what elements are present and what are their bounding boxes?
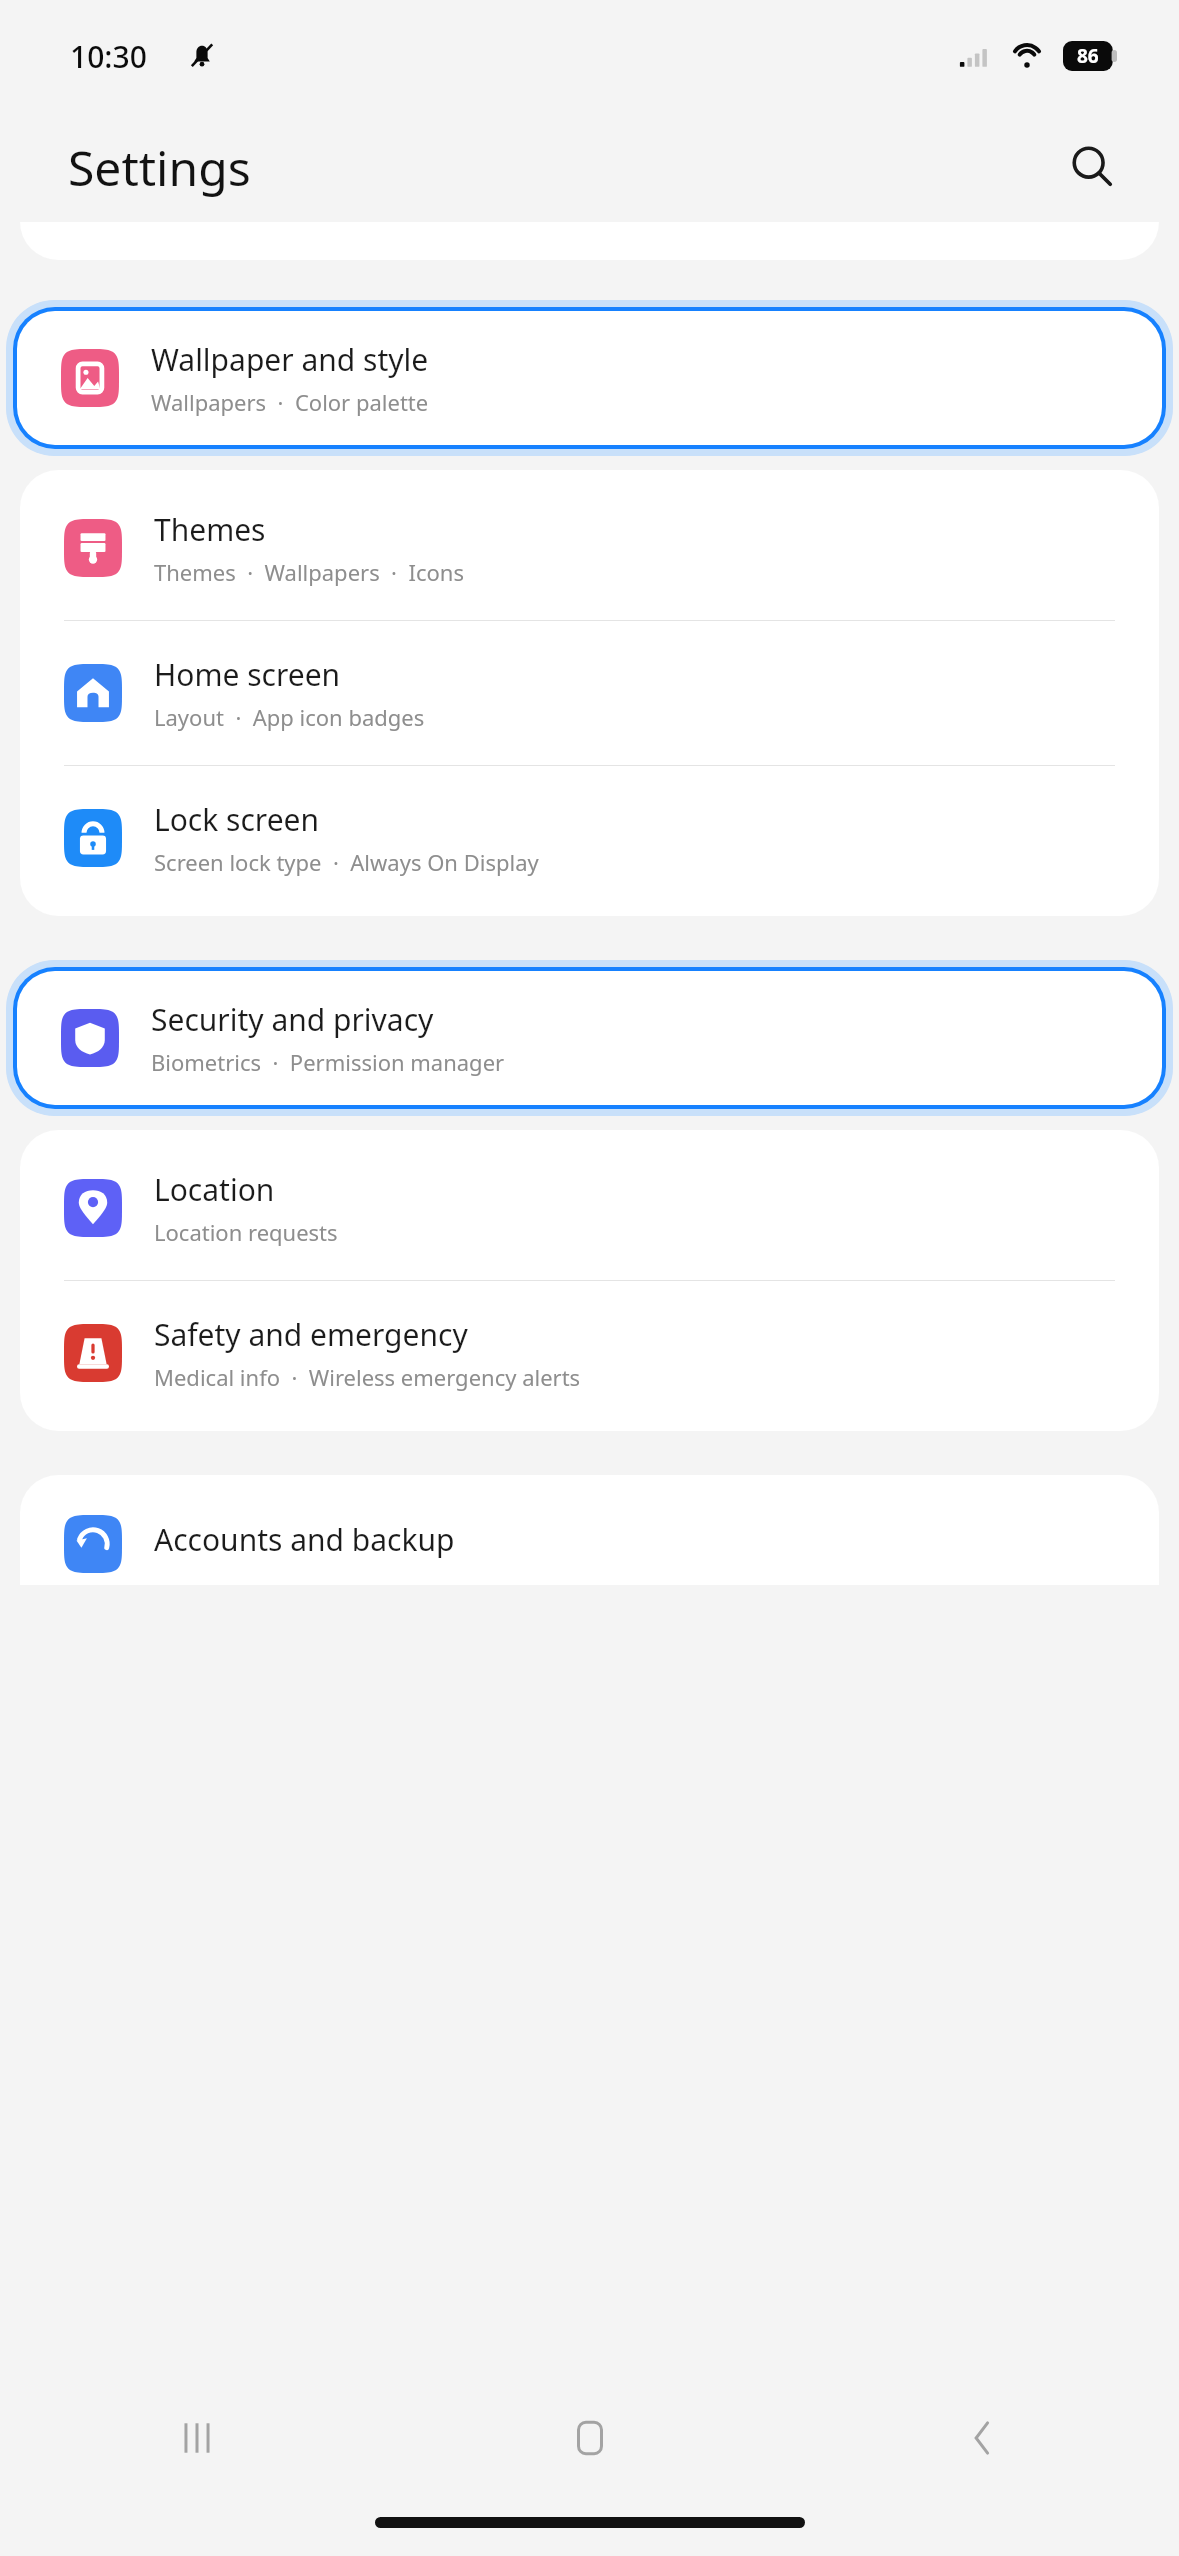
staticText: Home screen bbox=[154, 654, 341, 695]
button[interactable]: Home screen bbox=[20, 621, 1159, 766]
staticText: 86 bbox=[1077, 43, 1099, 69]
staticText: Wallpaper and style bbox=[151, 339, 429, 380]
staticText: Accounts and backup bbox=[154, 1519, 455, 1560]
button[interactable]: Themes bbox=[20, 476, 1159, 621]
staticText: Layout · App icon badges bbox=[154, 702, 425, 732]
button[interactable]: Accounts and backup bbox=[20, 1475, 1159, 1585]
staticText: Location bbox=[154, 1169, 275, 1210]
staticText: Screen lock type · Always On Display bbox=[154, 847, 539, 877]
button[interactable]: Home bbox=[540, 2388, 640, 2488]
staticText: Location requests bbox=[154, 1217, 338, 1247]
staticText: Themes · Wallpapers · Icons bbox=[154, 557, 464, 587]
staticText: Settings bbox=[68, 135, 251, 200]
staticText: Themes bbox=[154, 509, 266, 550]
staticText: Lock screen bbox=[154, 799, 320, 840]
button[interactable]: Lock screen bbox=[20, 766, 1159, 910]
staticText: Security and privacy bbox=[151, 999, 434, 1040]
staticText: Safety and emergency bbox=[154, 1314, 468, 1355]
button[interactable]: Wallpaper and style bbox=[17, 311, 1162, 445]
button[interactable]: Location bbox=[20, 1136, 1159, 1281]
staticText: 10:30 bbox=[70, 36, 147, 77]
button[interactable]: Recents bbox=[147, 2388, 247, 2488]
button[interactable]: Search bbox=[1057, 132, 1127, 202]
button[interactable]: Security and privacy bbox=[17, 971, 1162, 1105]
button[interactable]: Back bbox=[933, 2388, 1033, 2488]
staticText: Wallpapers · Color palette bbox=[151, 387, 429, 417]
staticText: Medical info · Wireless emergency alerts bbox=[154, 1362, 581, 1392]
button[interactable]: Safety and emergency bbox=[20, 1281, 1159, 1425]
staticText: Biometrics · Permission manager bbox=[151, 1047, 505, 1077]
